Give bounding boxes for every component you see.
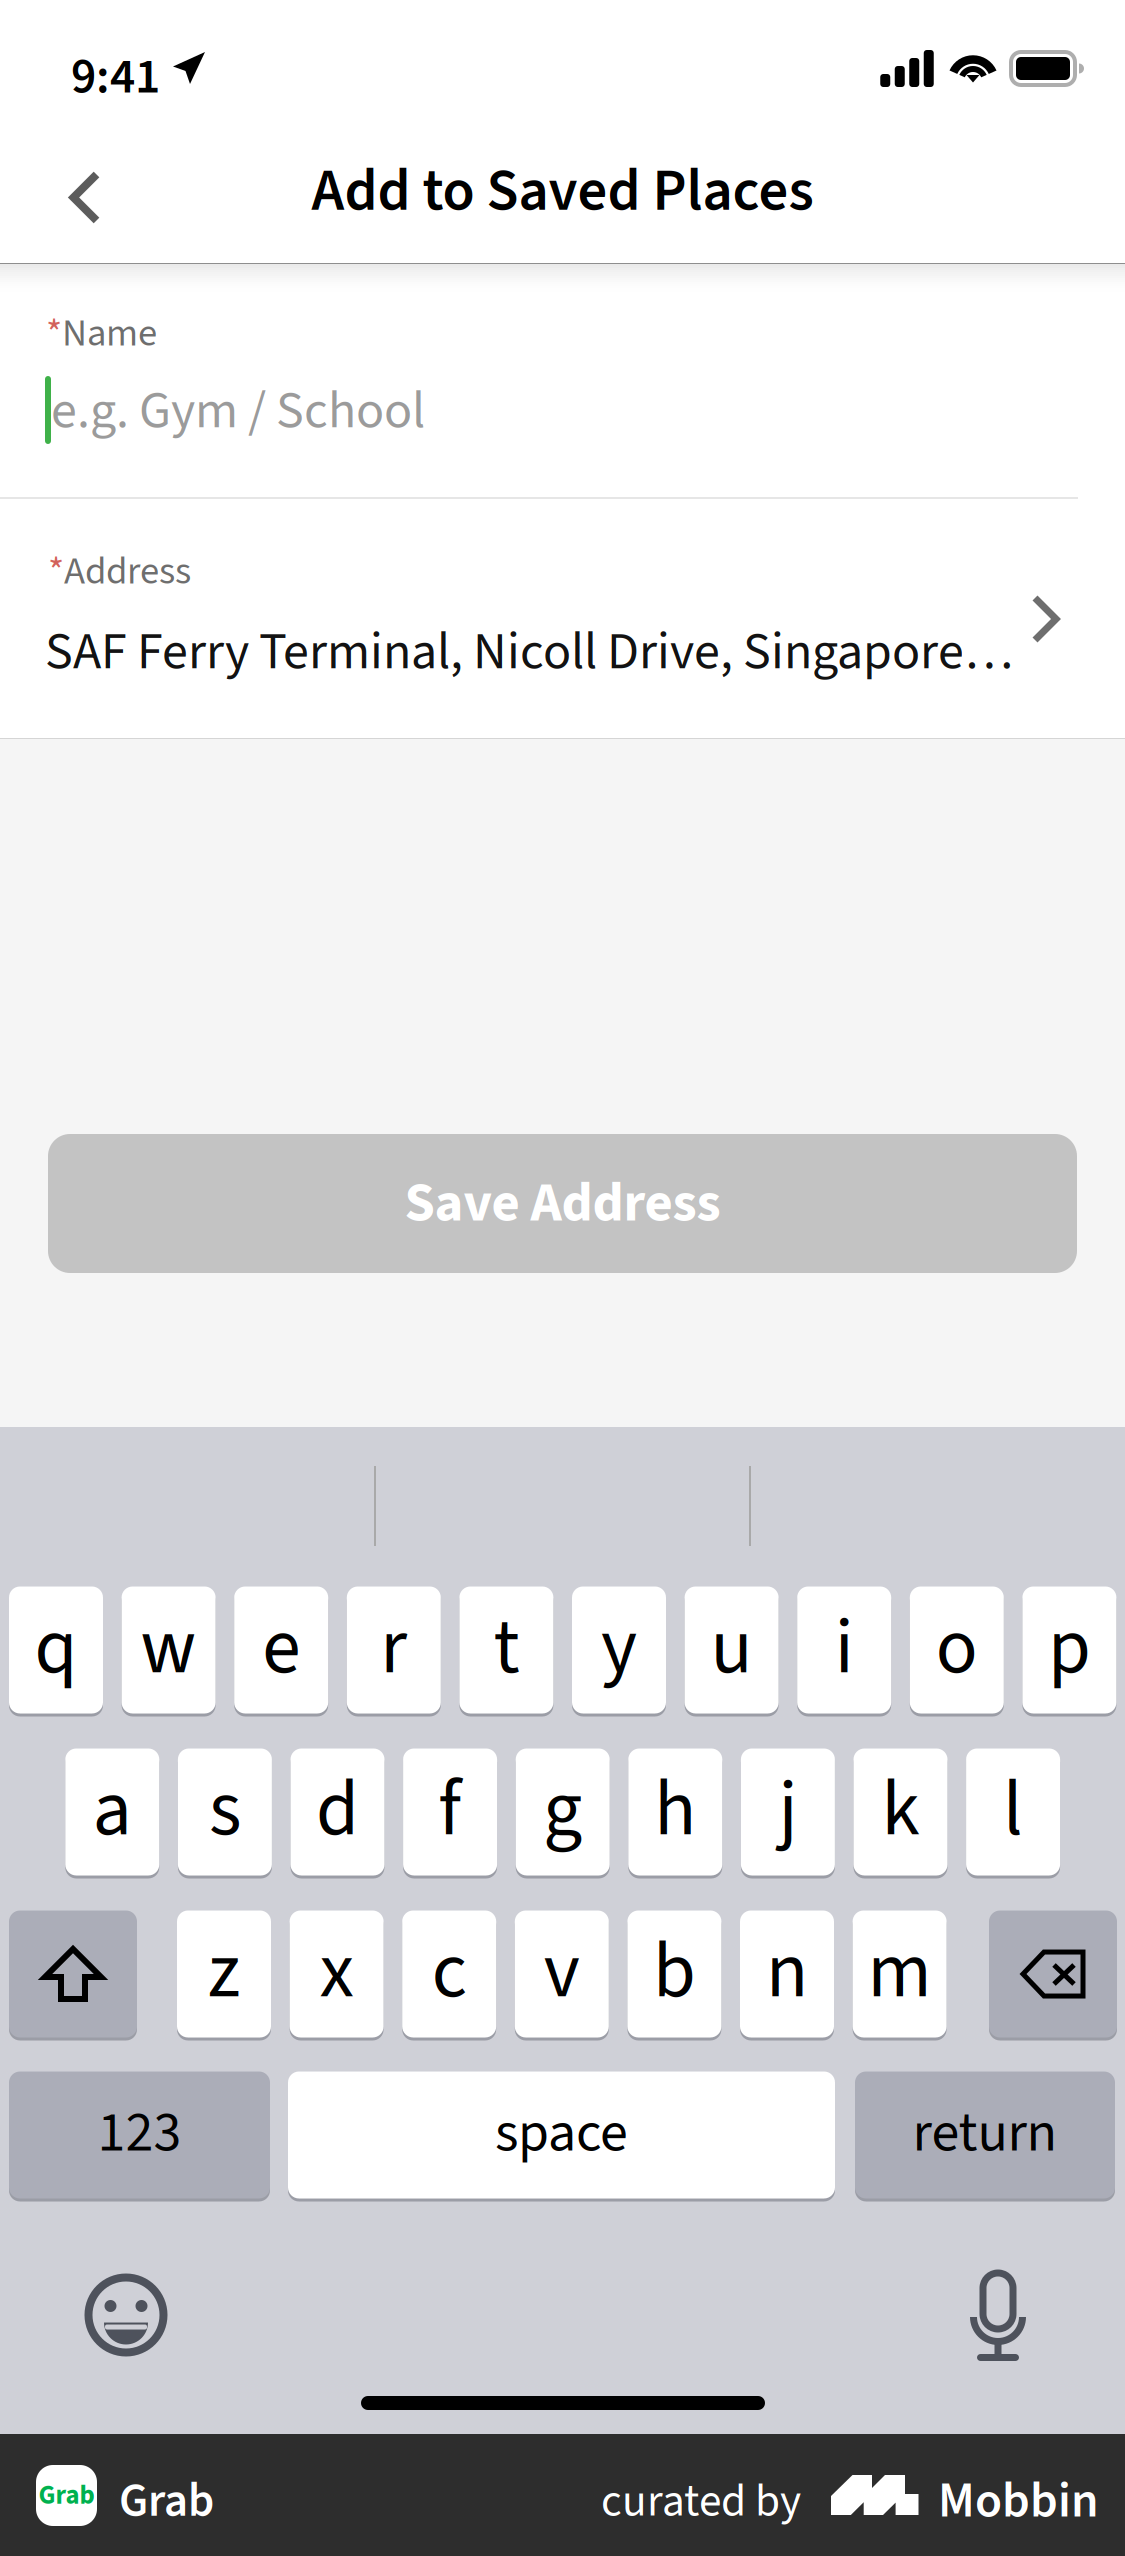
staticText: h bbox=[654, 1755, 696, 1865]
staticText: e.g. Gym / School bbox=[51, 374, 425, 448]
staticText: o bbox=[936, 1593, 978, 1703]
staticText: l bbox=[1003, 1755, 1023, 1865]
staticText: Save Address bbox=[404, 1165, 720, 1242]
staticText: v bbox=[544, 1917, 580, 2027]
staticText: s bbox=[209, 1755, 241, 1865]
staticText: u bbox=[711, 1593, 753, 1703]
staticText: z bbox=[207, 1917, 240, 2027]
button[interactable]: m bbox=[853, 1909, 947, 2039]
staticText: w bbox=[141, 1593, 197, 1703]
button[interactable]: z bbox=[177, 1909, 271, 2039]
staticText: b bbox=[653, 1917, 696, 2027]
staticText: return bbox=[912, 2093, 1057, 2173]
staticText: Grab bbox=[119, 2468, 214, 2534]
staticText: Grab bbox=[38, 2476, 94, 2514]
button[interactable]: space bbox=[288, 2070, 835, 2200]
button[interactable]: * bbox=[0, 499, 1125, 738]
button[interactable]: Shift bbox=[9, 1909, 137, 2039]
staticText: SAF Ferry Terminal, Nicoll Drive, Singap… bbox=[45, 615, 1020, 689]
staticText: Add to Saved Places bbox=[311, 150, 813, 233]
button[interactable]: q bbox=[9, 1585, 103, 1715]
staticText: f bbox=[439, 1755, 462, 1865]
staticText: 123 bbox=[97, 2093, 181, 2173]
staticText: Address bbox=[64, 544, 191, 599]
button[interactable]: return bbox=[855, 2070, 1115, 2200]
staticText: t bbox=[493, 1593, 519, 1703]
button[interactable]: Save Address bbox=[48, 1134, 1077, 1273]
button[interactable]: n bbox=[740, 1909, 834, 2039]
button[interactable]: v bbox=[515, 1909, 609, 2039]
staticText: q bbox=[34, 1593, 77, 1703]
staticText: * bbox=[48, 544, 64, 599]
button[interactable]: a bbox=[65, 1747, 159, 1877]
staticText: g bbox=[543, 1755, 582, 1865]
staticText: Name bbox=[62, 306, 157, 361]
staticText: a bbox=[93, 1755, 132, 1865]
button[interactable]: * bbox=[0, 264, 1125, 497]
button[interactable]: l bbox=[966, 1747, 1060, 1877]
button[interactable]: u bbox=[685, 1585, 779, 1715]
staticText: i bbox=[835, 1593, 854, 1703]
staticText: k bbox=[881, 1755, 919, 1865]
staticText: n bbox=[766, 1917, 808, 2027]
button[interactable]: 123 bbox=[9, 2070, 270, 2200]
staticText: x bbox=[320, 1917, 354, 2027]
button[interactable]: w bbox=[122, 1585, 216, 1715]
staticText: Mobbin bbox=[938, 2466, 1099, 2536]
staticText: curated by bbox=[601, 2469, 801, 2534]
staticText: d bbox=[316, 1755, 359, 1865]
staticText: m bbox=[868, 1917, 932, 2027]
button[interactable]: o bbox=[910, 1585, 1004, 1715]
staticText: c bbox=[432, 1917, 467, 2027]
button[interactable]: b bbox=[627, 1909, 721, 2039]
button[interactable]: i bbox=[797, 1585, 891, 1715]
staticText: e bbox=[262, 1593, 300, 1703]
button[interactable]: g bbox=[516, 1747, 610, 1877]
button[interactable]: p bbox=[1022, 1585, 1116, 1715]
staticText: y bbox=[601, 1593, 637, 1703]
button[interactable]: x bbox=[290, 1909, 384, 2039]
button[interactable]: r bbox=[347, 1585, 441, 1715]
staticText: 9:41 bbox=[71, 42, 160, 112]
staticText: * bbox=[46, 306, 62, 361]
button[interactable]: d bbox=[290, 1747, 384, 1877]
button[interactable]: y bbox=[572, 1585, 666, 1715]
staticText: r bbox=[380, 1593, 407, 1703]
staticText: j bbox=[778, 1755, 797, 1865]
button[interactable]: t bbox=[459, 1585, 553, 1715]
button[interactable]: Delete bbox=[989, 1909, 1117, 2039]
button[interactable]: Dictate bbox=[969, 2273, 1027, 2361]
button[interactable]: j bbox=[741, 1747, 835, 1877]
button[interactable]: s bbox=[178, 1747, 272, 1877]
button[interactable]: Emoji bbox=[85, 2274, 167, 2356]
button[interactable]: Back bbox=[30, 132, 140, 263]
button[interactable]: k bbox=[853, 1747, 947, 1877]
button[interactable]: e bbox=[234, 1585, 328, 1715]
button[interactable]: c bbox=[402, 1909, 496, 2039]
staticText: p bbox=[1048, 1593, 1091, 1703]
staticText: space bbox=[495, 2093, 628, 2173]
button[interactable]: h bbox=[628, 1747, 722, 1877]
button[interactable]: f bbox=[403, 1747, 497, 1877]
